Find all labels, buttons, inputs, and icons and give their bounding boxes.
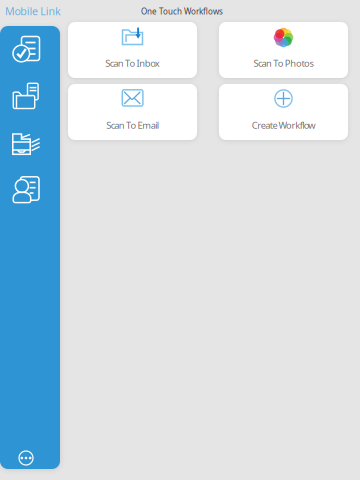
- staticText: One Touch Workflows: [141, 6, 223, 17]
- staticText: Create Workflow: [252, 119, 315, 131]
- button[interactable]: Scan To Email: [68, 84, 197, 140]
- button[interactable]: More: [0, 443, 56, 473]
- button[interactable]: Scanners: [0, 121, 56, 167]
- button[interactable]: Scan To Inbox: [68, 22, 197, 78]
- staticText: Scan To Email: [106, 119, 159, 131]
- button[interactable]: Tasks: [0, 26, 56, 72]
- button[interactable]: Create Workflow: [219, 84, 348, 140]
- staticText: Scan To Inbox: [105, 57, 160, 69]
- staticText: Mobile Link: [5, 4, 61, 18]
- button[interactable]: Documents: [0, 73, 56, 119]
- staticText: Scan To Photos: [253, 57, 313, 69]
- button[interactable]: Contacts: [0, 167, 56, 213]
- button[interactable]: Scan To Photos: [219, 22, 348, 78]
